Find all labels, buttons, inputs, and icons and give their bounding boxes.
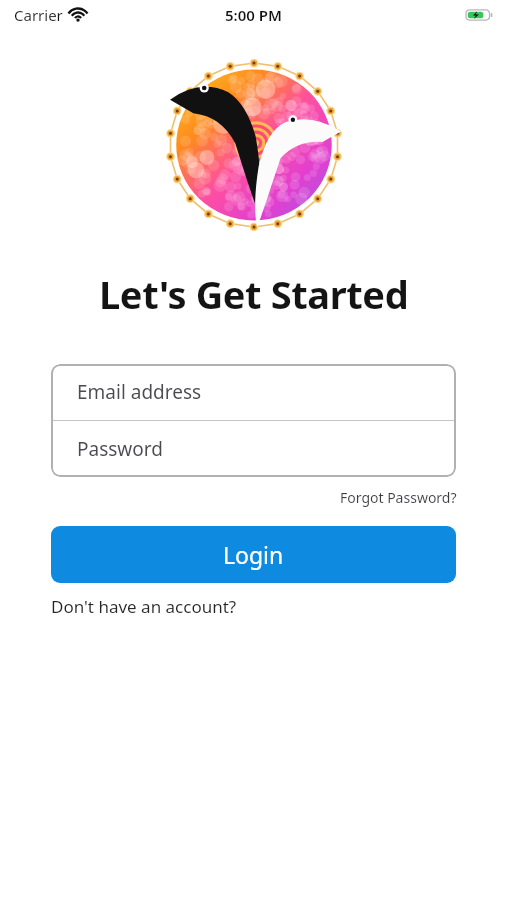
staticText: Login bbox=[223, 539, 284, 570]
button[interactable]: Login bbox=[51, 526, 456, 583]
staticText: Carrier bbox=[14, 5, 63, 25]
staticText: Password bbox=[77, 436, 163, 462]
staticText: Forgot Password? bbox=[340, 488, 457, 507]
button[interactable]: Forgot Password? bbox=[338, 485, 459, 510]
button[interactable]: Email address bbox=[51, 364, 456, 420]
staticText: Let's Get Started bbox=[99, 268, 409, 320]
staticText: Email address bbox=[77, 379, 202, 405]
button[interactable]: Password bbox=[51, 421, 456, 477]
staticText: 5:00 PM bbox=[225, 5, 282, 25]
staticText: Don't have an account? bbox=[51, 595, 237, 618]
button[interactable]: Don't have an account? bbox=[49, 592, 239, 621]
